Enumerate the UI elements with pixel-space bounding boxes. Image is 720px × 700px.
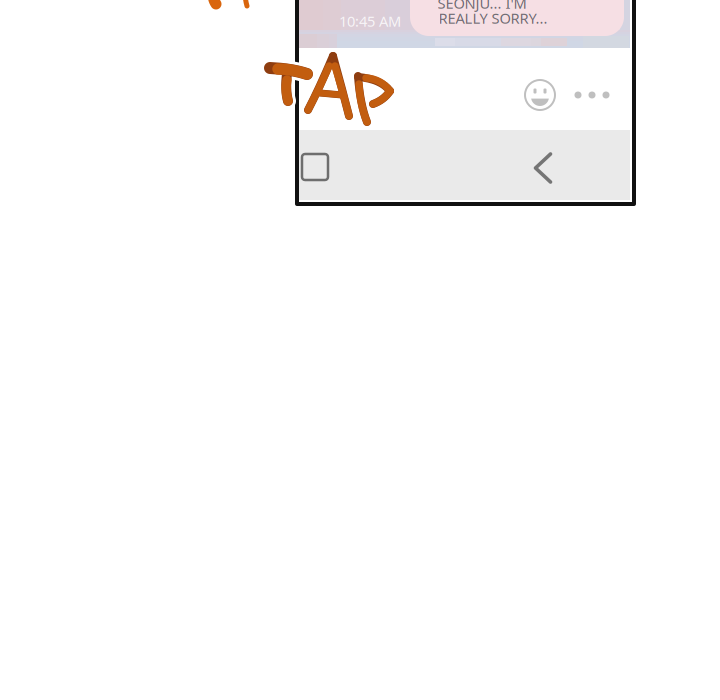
staticText: REALLY SORRY... xyxy=(438,8,547,28)
button[interactable]: More options xyxy=(570,76,614,114)
button[interactable]: Emoji xyxy=(521,76,559,114)
staticText: SEONJU... I'M xyxy=(437,0,526,13)
staticText: 10:45 AM xyxy=(339,11,401,31)
button[interactable]: Back xyxy=(516,142,570,194)
button[interactable]: Recent apps xyxy=(288,141,342,193)
